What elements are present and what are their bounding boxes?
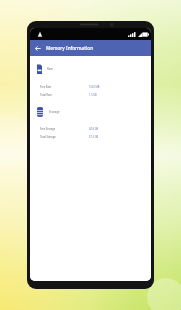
staticText: Free Storage <box>40 127 56 130</box>
staticText: Memory Information <box>46 45 94 51</box>
staticText: 1.5 GB <box>89 93 97 96</box>
button[interactable]: Total Ram <box>40 92 151 97</box>
staticText: Ram <box>47 67 54 71</box>
button[interactable]: Storage <box>37 106 60 117</box>
staticText: Storage <box>49 110 60 114</box>
button[interactable]: Ram <box>37 63 54 74</box>
staticText: Total Ram <box>40 93 52 96</box>
button[interactable]: Free Ram <box>40 84 151 89</box>
staticText: 1023 MB <box>89 85 100 88</box>
staticText: 57.3 GB <box>89 135 99 138</box>
staticText: 40.8 GB <box>89 127 99 130</box>
staticText: Total Storage <box>40 135 56 138</box>
staticText: Free Ram <box>40 85 52 88</box>
button[interactable]: Total Storage <box>40 134 151 139</box>
button[interactable]: Free Storage <box>40 126 151 131</box>
button[interactable]: Back <box>30 40 46 56</box>
